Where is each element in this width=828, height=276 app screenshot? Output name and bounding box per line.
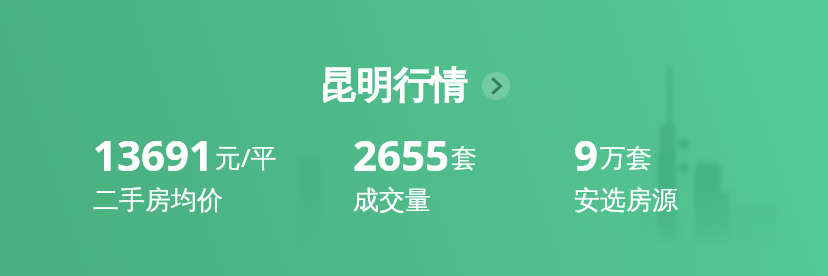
staticText: 元/平 <box>215 139 277 175</box>
staticText: 安选房源 <box>574 184 678 217</box>
staticText: 2655 <box>353 126 450 183</box>
staticText: 万套 <box>600 142 652 175</box>
button[interactable]: 13691 <box>93 126 277 217</box>
staticText: 二手房均价 <box>93 184 223 217</box>
staticText: 13691 <box>93 126 214 183</box>
staticText: 昆明行情 <box>319 62 467 109</box>
staticText: 套 <box>451 142 477 175</box>
button[interactable]: 昆明行情 <box>319 62 510 109</box>
staticText: 成交量 <box>353 184 431 217</box>
button[interactable]: 查看昆明行情详情 <box>482 72 510 100</box>
button[interactable]: 9 <box>574 126 678 217</box>
button[interactable]: 2655 <box>353 126 477 217</box>
staticText: 9 <box>574 126 599 183</box>
